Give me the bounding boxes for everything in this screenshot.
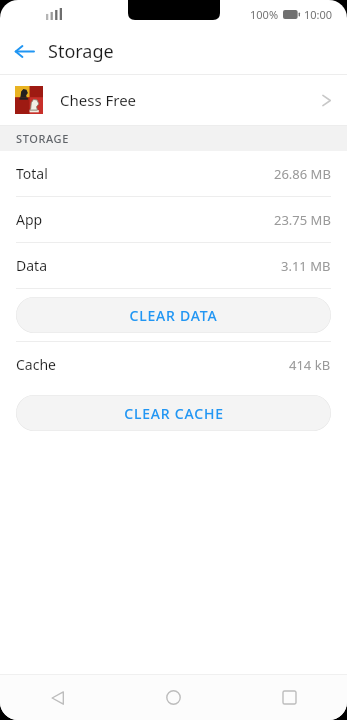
button[interactable]: CLEAR DATA bbox=[16, 297, 331, 333]
staticText: 26.86 MB bbox=[274, 165, 331, 183]
staticText: Data bbox=[16, 256, 47, 275]
staticText: 10:00 bbox=[304, 7, 333, 22]
staticText: Total bbox=[16, 164, 48, 183]
staticText: STORAGE bbox=[16, 131, 69, 146]
button[interactable]: Back bbox=[0, 675, 115, 720]
staticText: Chess Free bbox=[60, 90, 137, 110]
staticText: Storage bbox=[48, 39, 114, 64]
staticText: 23.75 MB bbox=[274, 211, 331, 229]
staticText: CLEAR DATA bbox=[129, 306, 218, 325]
button[interactable]: Cache bbox=[0, 342, 347, 387]
staticText: 3.11 MB bbox=[281, 257, 331, 275]
staticText: App bbox=[16, 210, 43, 229]
button[interactable]: App bbox=[0, 197, 347, 242]
staticText: Cache bbox=[16, 355, 56, 374]
staticText: 414 kB bbox=[289, 356, 331, 374]
button[interactable]: Data bbox=[0, 243, 347, 288]
button[interactable]: Recents bbox=[231, 675, 347, 720]
button[interactable]: Back bbox=[0, 28, 48, 74]
button[interactable]: Chess Free bbox=[0, 75, 347, 125]
button[interactable]: Home bbox=[115, 675, 231, 720]
button[interactable]: Total bbox=[0, 151, 347, 196]
button[interactable]: CLEAR CACHE bbox=[16, 395, 331, 431]
staticText: 100% bbox=[250, 7, 279, 22]
staticText: CLEAR CACHE bbox=[124, 404, 224, 423]
